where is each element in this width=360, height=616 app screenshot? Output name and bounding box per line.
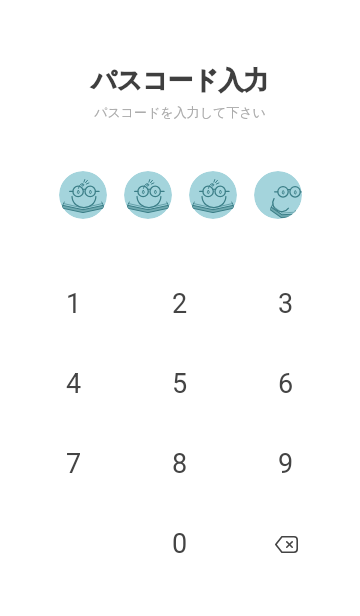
button[interactable]: Delete [233,504,339,584]
button[interactable]: 8 [127,424,233,504]
staticText: 2 [172,288,188,320]
staticText: 9 [278,448,294,480]
staticText: 6 [278,368,294,400]
staticText: 3 [278,288,294,320]
other: Delete [275,536,298,553]
staticText: 1 [66,288,82,320]
button[interactable]: 2 [127,264,233,344]
button[interactable]: 4 [21,344,127,424]
staticText: 7 [66,448,82,480]
button[interactable]: 7 [21,424,127,504]
staticText: パスコードを入力して下さい [94,104,266,120]
staticText: 0 [172,528,188,560]
button[interactable]: 9 [233,424,339,504]
button[interactable]: 1 [21,264,127,344]
staticText: 5 [172,368,188,400]
button[interactable]: 3 [233,264,339,344]
button[interactable]: 6 [233,344,339,424]
button[interactable]: 0 [127,504,233,584]
staticText: 4 [66,368,82,400]
staticText: パスコード入力 [91,65,269,96]
button[interactable]: 5 [127,344,233,424]
staticText: 8 [172,448,188,480]
